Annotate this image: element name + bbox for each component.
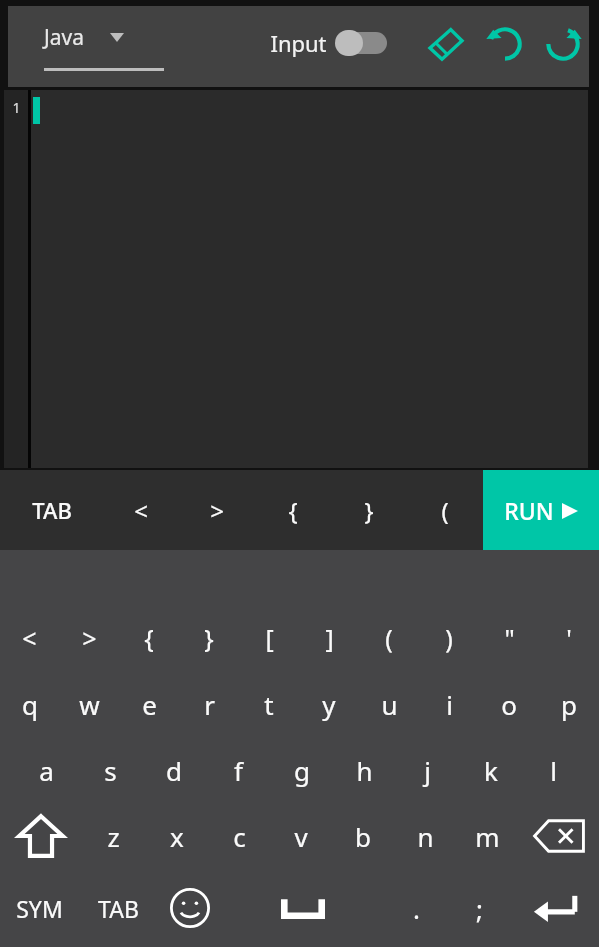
button[interactable]: TAB bbox=[0, 470, 103, 550]
button[interactable]: Java bbox=[44, 23, 164, 71]
staticText: } bbox=[364, 494, 374, 527]
staticText: SYM bbox=[16, 893, 63, 924]
staticText: ( bbox=[385, 621, 393, 655]
button[interactable]: m bbox=[456, 803, 518, 869]
button[interactable]: Redo bbox=[536, 17, 590, 71]
button[interactable]: b bbox=[332, 803, 394, 869]
button[interactable]: k bbox=[459, 737, 522, 803]
button[interactable]: Input bbox=[270, 28, 387, 58]
staticText: Java bbox=[44, 23, 84, 52]
staticText: d bbox=[166, 753, 182, 788]
staticText: t bbox=[264, 687, 274, 722]
button[interactable]: z bbox=[82, 803, 145, 869]
button[interactable]: > bbox=[179, 470, 255, 550]
staticText: h bbox=[356, 753, 373, 788]
staticText: { bbox=[144, 621, 154, 655]
button[interactable]: t bbox=[239, 671, 299, 737]
button[interactable]: w bbox=[59, 671, 119, 737]
button[interactable]: i bbox=[419, 671, 479, 737]
staticText: j bbox=[424, 753, 431, 788]
staticText: s bbox=[104, 753, 117, 788]
button[interactable]: Emoji bbox=[158, 869, 221, 947]
button[interactable]: d bbox=[142, 737, 206, 803]
staticText: { bbox=[288, 494, 298, 527]
button[interactable]: < bbox=[0, 605, 59, 671]
button[interactable]: u bbox=[359, 671, 419, 737]
staticText: TAB bbox=[32, 495, 72, 525]
staticText: ( bbox=[441, 494, 449, 527]
button[interactable]: ; bbox=[448, 869, 511, 947]
button[interactable]: Space bbox=[221, 869, 385, 947]
button[interactable]: j bbox=[396, 737, 459, 803]
button[interactable]: v bbox=[270, 803, 332, 869]
staticText: g bbox=[294, 753, 310, 788]
button[interactable]: ) bbox=[419, 605, 479, 671]
button[interactable]: g bbox=[270, 737, 333, 803]
button[interactable]: ' bbox=[539, 605, 599, 671]
button[interactable]: } bbox=[331, 470, 407, 550]
button[interactable]: f bbox=[206, 737, 270, 803]
button[interactable]: h bbox=[333, 737, 396, 803]
staticText: " bbox=[504, 621, 515, 655]
button[interactable]: [ bbox=[239, 605, 299, 671]
button[interactable]: r bbox=[179, 671, 239, 737]
button[interactable]: " bbox=[479, 605, 539, 671]
button[interactable]: ( bbox=[359, 605, 419, 671]
button[interactable]: s bbox=[78, 737, 142, 803]
staticText: k bbox=[484, 753, 498, 788]
staticText: z bbox=[107, 819, 120, 854]
staticText: < bbox=[134, 494, 148, 527]
staticText: ) bbox=[445, 621, 453, 655]
button[interactable]: TAB bbox=[79, 869, 158, 947]
button[interactable]: l bbox=[522, 737, 585, 803]
button[interactable]: Enter bbox=[511, 869, 599, 947]
button[interactable]: p bbox=[539, 671, 599, 737]
button[interactable]: { bbox=[119, 605, 179, 671]
button[interactable]: Shift bbox=[0, 803, 82, 869]
button[interactable]: ] bbox=[299, 605, 359, 671]
staticText: c bbox=[233, 819, 246, 854]
button[interactable]: n bbox=[394, 803, 456, 869]
staticText: x bbox=[170, 819, 184, 854]
button[interactable]: e bbox=[119, 671, 179, 737]
staticText: m bbox=[475, 819, 500, 854]
button[interactable]: ( bbox=[407, 470, 483, 550]
staticText: v bbox=[294, 819, 308, 854]
button[interactable]: Undo bbox=[478, 17, 532, 71]
staticText: . bbox=[413, 891, 420, 926]
button[interactable]: Backspace bbox=[518, 803, 599, 869]
staticText: i bbox=[446, 687, 453, 722]
staticText: TAB bbox=[98, 893, 139, 924]
staticText: > bbox=[82, 621, 97, 655]
button[interactable]: a bbox=[14, 737, 78, 803]
staticText: l bbox=[550, 753, 557, 788]
button[interactable]: Clear bbox=[420, 18, 472, 70]
button[interactable]: y bbox=[299, 671, 359, 737]
button[interactable]: SYM bbox=[0, 869, 79, 947]
staticText: > bbox=[210, 494, 224, 527]
button[interactable]: q bbox=[0, 671, 59, 737]
button[interactable]: } bbox=[179, 605, 239, 671]
staticText: RUN bbox=[504, 495, 554, 526]
staticText: q bbox=[22, 687, 38, 722]
button[interactable]: x bbox=[145, 803, 208, 869]
button[interactable]: { bbox=[255, 470, 331, 550]
button[interactable]: c bbox=[208, 803, 270, 869]
staticText: p bbox=[561, 687, 577, 722]
staticText: y bbox=[322, 687, 336, 722]
button[interactable]: RUN bbox=[483, 470, 599, 550]
button[interactable]: > bbox=[59, 605, 119, 671]
staticText: b bbox=[355, 819, 371, 854]
staticText: r bbox=[204, 687, 215, 722]
button[interactable]: < bbox=[103, 470, 179, 550]
button[interactable]: . bbox=[385, 869, 448, 947]
staticText: a bbox=[39, 753, 54, 788]
staticText: ' bbox=[566, 621, 572, 655]
staticText: [ bbox=[265, 621, 274, 655]
staticText: Input bbox=[270, 28, 327, 58]
button[interactable] bbox=[31, 90, 588, 468]
staticText: o bbox=[501, 687, 517, 722]
staticText: f bbox=[234, 753, 243, 788]
button[interactable]: o bbox=[479, 671, 539, 737]
staticText: < bbox=[22, 621, 37, 655]
